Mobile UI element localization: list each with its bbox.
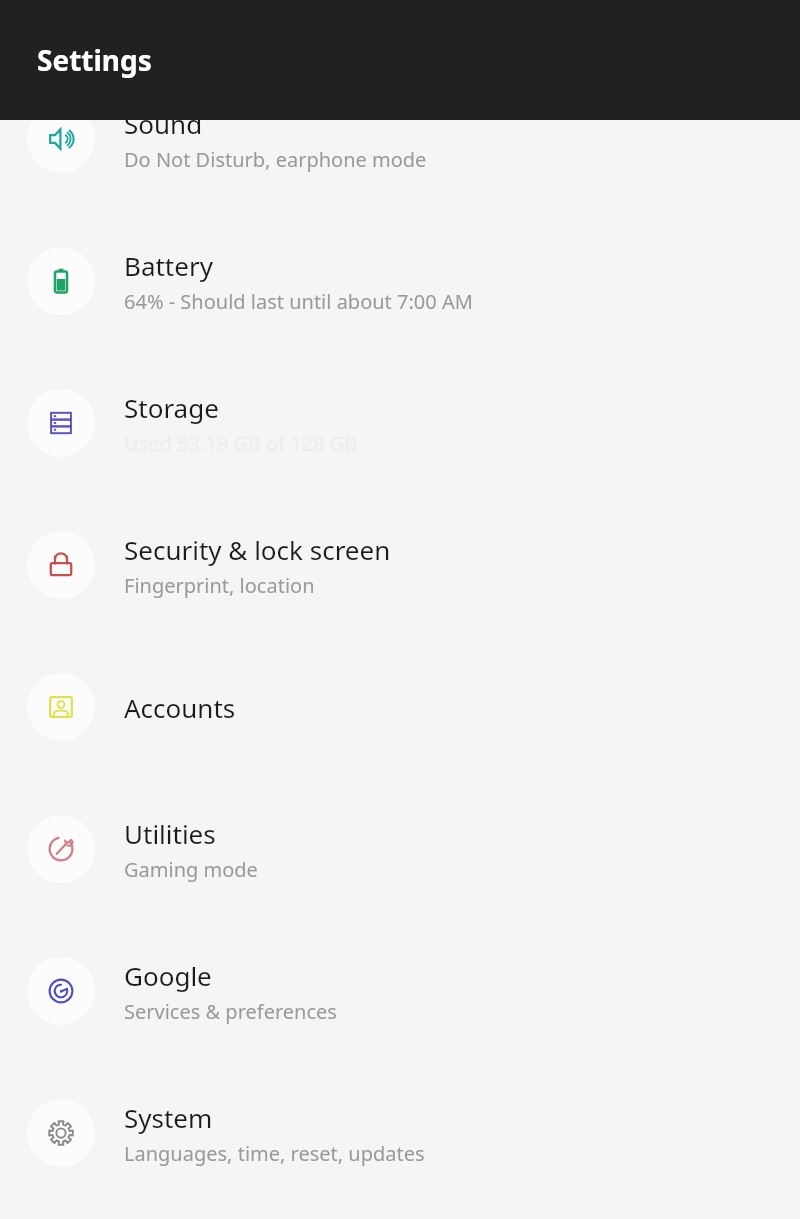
button[interactable]: Sound bbox=[0, 68, 800, 210]
staticText: Battery bbox=[124, 248, 213, 283]
staticText: 64% - Should last until about 7:00 AM bbox=[124, 288, 473, 315]
staticText: Storage bbox=[124, 390, 219, 425]
staticText: Do Not Disturb, earphone mode bbox=[124, 146, 427, 173]
button[interactable]: Accounts bbox=[0, 636, 800, 778]
button[interactable]: System bbox=[0, 1062, 800, 1204]
button[interactable]: Battery bbox=[0, 210, 800, 352]
staticText: Accounts bbox=[124, 690, 236, 725]
staticText: Gaming mode bbox=[124, 856, 258, 883]
staticText: Utilities bbox=[124, 816, 216, 851]
staticText: Google bbox=[124, 958, 212, 993]
staticText: Languages, time, reset, updates bbox=[124, 1140, 425, 1167]
button[interactable]: Google bbox=[0, 920, 800, 1062]
staticText: System bbox=[124, 1100, 213, 1135]
staticText: Security & lock screen bbox=[124, 532, 391, 567]
staticText: Services & preferences bbox=[124, 998, 337, 1025]
staticText: Fingerprint, location bbox=[124, 572, 315, 599]
button[interactable]: Storage bbox=[0, 352, 800, 494]
staticText: Settings bbox=[37, 41, 152, 79]
staticText: Sound bbox=[124, 106, 203, 141]
button[interactable]: Security & lock screen bbox=[0, 494, 800, 636]
button[interactable]: Utilities bbox=[0, 778, 800, 920]
